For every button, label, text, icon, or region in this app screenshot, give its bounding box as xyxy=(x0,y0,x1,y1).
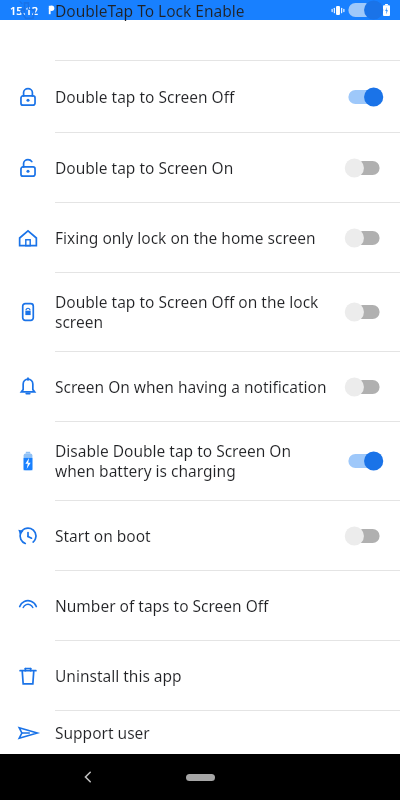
button[interactable]: Double tap to Screen On xyxy=(0,133,400,202)
button[interactable]: Fixing only lock on the home screen xyxy=(0,203,400,272)
staticText: Start on boot xyxy=(55,525,332,546)
button[interactable]: Start on boot xyxy=(0,501,400,570)
staticText: 100% xyxy=(350,3,379,18)
staticText: Fixing only lock on the home screen xyxy=(55,227,332,248)
staticText: Double tap to Screen On xyxy=(55,157,332,178)
button[interactable]: Home xyxy=(178,766,223,789)
button[interactable]: Screen On when having a notification xyxy=(0,352,400,421)
button[interactable]: Uninstall this app xyxy=(0,641,400,710)
button[interactable]: Number of taps to Screen Off xyxy=(0,571,400,640)
staticText: Double tap to Screen Off on the lock scr… xyxy=(55,291,332,333)
staticText: Number of taps to Screen Off xyxy=(55,595,388,616)
staticText: Double tap to Screen Off xyxy=(55,86,332,107)
button[interactable]: Double tap to Screen Off xyxy=(0,61,400,132)
staticText: Disable Double tap to Screen On when bat… xyxy=(55,440,332,482)
staticText: Support user xyxy=(55,722,388,743)
staticText: Uninstall this app xyxy=(55,665,388,686)
button[interactable]: Support user xyxy=(0,711,400,754)
button[interactable]: Back xyxy=(70,759,106,795)
button[interactable]: Disable Double tap to Screen On when bat… xyxy=(0,422,400,500)
staticText: 15:12 xyxy=(10,3,39,18)
staticText: Screen On when having a notification xyxy=(55,376,332,397)
button[interactable]: Double tap to Screen Off on the lock scr… xyxy=(0,273,400,351)
staticText: DoubleTap To Lock Enable xyxy=(55,0,245,21)
